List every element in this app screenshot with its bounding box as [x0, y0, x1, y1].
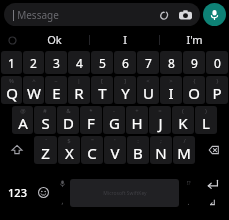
button[interactable]: ]	[114, 76, 136, 104]
button[interactable]: Comma, voice typing	[54, 165, 70, 220]
button[interactable]: -	[103, 106, 125, 134]
button[interactable]: }	[206, 76, 228, 104]
staticText: S	[41, 113, 50, 133]
staticText: A	[18, 113, 28, 133]
button[interactable]: "	[81, 136, 103, 164]
staticText: N	[155, 143, 167, 163]
button[interactable]: 8	[160, 51, 182, 74]
button[interactable]: Shift	[1, 136, 33, 164]
staticText: 3	[53, 55, 60, 71]
button[interactable]: ~	[45, 76, 67, 104]
staticText: :	[137, 137, 139, 145]
button[interactable]: %	[1, 76, 22, 104]
button[interactable]: :	[127, 136, 149, 164]
staticText: V	[110, 143, 120, 163]
button[interactable]: /	[173, 136, 195, 164]
button[interactable]: Enter	[197, 165, 227, 220]
staticText: #	[43, 107, 47, 115]
button[interactable]: $	[58, 136, 80, 164]
button[interactable]: {	[183, 76, 205, 104]
button[interactable]: ;	[150, 136, 172, 164]
staticText: X	[65, 143, 74, 163]
staticText: 7	[145, 55, 152, 71]
button[interactable]: Emoji	[32, 165, 54, 220]
staticText: )	[205, 107, 207, 115]
staticText: M	[177, 143, 191, 163]
staticText: $	[67, 137, 71, 145]
button[interactable]: &	[57, 106, 79, 134]
staticText: K	[178, 113, 188, 133]
staticText: /	[183, 137, 186, 145]
button[interactable]: +	[126, 106, 148, 134]
staticText: P	[212, 83, 222, 103]
button[interactable]: <	[137, 76, 159, 104]
button[interactable]: (	[172, 106, 194, 134]
button[interactable]: 9	[183, 51, 205, 74]
button[interactable]: @	[12, 106, 33, 134]
staticText: %	[9, 77, 14, 85]
staticText: "	[91, 137, 94, 145]
button[interactable]: Voice message	[203, 3, 226, 26]
button[interactable]: 123	[2, 165, 32, 220]
staticText: +	[135, 107, 139, 115]
staticText: =	[158, 107, 162, 115]
staticText: U	[143, 83, 154, 103]
staticText: (	[182, 107, 184, 115]
staticText: 6	[122, 55, 129, 71]
button[interactable]: 4	[68, 51, 90, 74]
staticText: !?	[186, 179, 191, 187]
staticText: >	[169, 77, 173, 85]
button[interactable]: 2	[23, 51, 44, 74]
staticText: [	[101, 77, 103, 85]
button[interactable]: |	[68, 76, 90, 104]
button[interactable]: *	[80, 106, 102, 134]
button[interactable]: )	[195, 106, 217, 134]
button[interactable]: 0	[206, 51, 228, 74]
button[interactable]: [	[91, 76, 113, 104]
button[interactable]: Attach file	[155, 7, 171, 23]
button[interactable]: Keyboard menu	[5, 33, 19, 47]
staticText: ,	[61, 194, 64, 206]
staticText: Q	[6, 83, 18, 103]
button[interactable]: I'm	[160, 29, 229, 50]
button[interactable]: >	[160, 76, 182, 104]
button[interactable]: 6	[114, 51, 136, 74]
button[interactable]: 1	[1, 51, 22, 74]
button[interactable]: Backspace	[196, 136, 228, 164]
staticText: ]	[124, 77, 126, 85]
staticText: 8	[168, 55, 175, 71]
button[interactable]: I	[90, 29, 159, 50]
button[interactable]: Camera	[177, 7, 193, 23]
button[interactable]: ^	[23, 76, 44, 104]
button[interactable]: Ok	[20, 29, 89, 50]
staticText: ~	[54, 77, 58, 85]
button[interactable]: #	[34, 106, 56, 134]
button[interactable]: Message	[4, 3, 200, 26]
staticText: I	[168, 83, 174, 103]
button[interactable]: =	[149, 106, 171, 134]
staticText: J	[158, 113, 163, 133]
staticText: *	[89, 107, 93, 115]
staticText: |	[77, 77, 81, 85]
staticText: I	[123, 32, 127, 47]
button[interactable]: 5	[91, 51, 113, 74]
staticText: 5	[99, 55, 106, 71]
staticText: @	[20, 107, 26, 115]
staticText: I'm	[186, 32, 203, 47]
button[interactable]: Period	[179, 165, 197, 220]
button[interactable]: 7	[137, 51, 159, 74]
button[interactable]: `	[34, 136, 57, 164]
staticText: H	[131, 113, 143, 133]
staticText: Y	[121, 83, 130, 103]
staticText: C	[87, 143, 97, 163]
button[interactable]: 3	[45, 51, 67, 74]
staticText: .	[187, 195, 190, 207]
staticText: 123	[8, 185, 27, 200]
staticText: T	[98, 83, 107, 103]
staticText: R	[74, 83, 84, 103]
button[interactable]: '	[104, 136, 126, 164]
staticText: '	[114, 137, 116, 145]
staticText: Microsoft SwiftKey	[103, 190, 147, 197]
staticText: }	[216, 77, 219, 85]
